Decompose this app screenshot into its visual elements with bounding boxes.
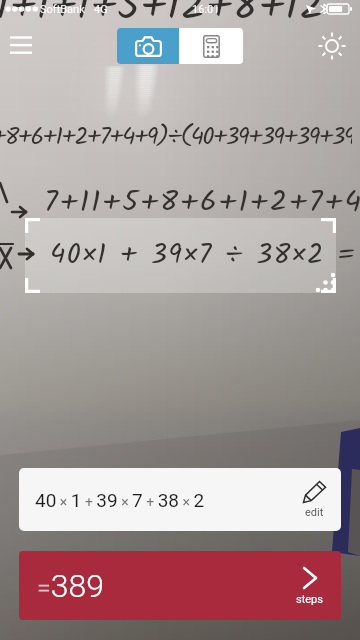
staticText: +8+6+1+2+7+4+9)÷(40+39+39+39+39+38+39+3: [0, 118, 352, 156]
staticText: steps: [296, 593, 323, 606]
staticText: 7+11+5+8+6+1+2+7+4: [44, 179, 360, 227]
staticText: SoftBank: [40, 3, 85, 16]
button[interactable]: 40 × 1 + 39 × 7 + 38 × 2: [19, 468, 341, 531]
staticText: 40×1 + 39×7 ÷ 38×2 =: [50, 233, 357, 278]
staticText: 40 × 1 + 39 × 7 + 38 × 2: [35, 489, 205, 511]
staticText: =389: [37, 567, 105, 605]
button[interactable]: =389: [19, 551, 341, 620]
button[interactable]: Menu: [0, 22, 44, 68]
staticText: 16:01: [192, 3, 220, 16]
button[interactable]: Camera mode: [117, 28, 179, 64]
staticText: 1+1+1+5+12+8+12: [0, 0, 325, 41]
button[interactable]: Flashlight: [308, 22, 356, 70]
staticText: 4G: [94, 3, 108, 16]
button[interactable]: Calculator mode: [179, 28, 243, 64]
staticText: edit: [305, 506, 324, 519]
